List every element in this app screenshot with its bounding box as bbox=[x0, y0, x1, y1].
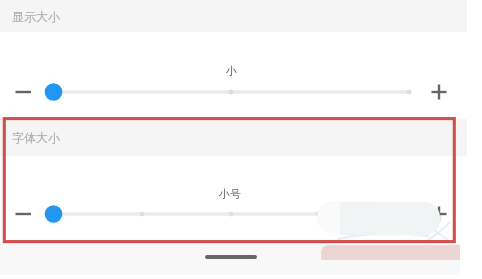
button[interactable]: Size slider bbox=[44, 200, 419, 228]
button[interactable]: 显示大小 bbox=[0, 0, 467, 32]
button[interactable]: Increase size bbox=[423, 198, 455, 230]
staticText: 显示大小 bbox=[12, 9, 60, 24]
staticText: 字体大小 bbox=[12, 130, 60, 145]
button[interactable]: Decrease size bbox=[8, 198, 40, 230]
staticText: 小 bbox=[226, 64, 237, 78]
staticText: 小号 bbox=[219, 187, 241, 201]
button[interactable]: Size slider bbox=[44, 78, 419, 106]
button[interactable]: Increase size bbox=[423, 76, 455, 108]
button[interactable]: 字体大小 bbox=[0, 119, 467, 156]
button[interactable]: Decrease size bbox=[8, 76, 40, 108]
